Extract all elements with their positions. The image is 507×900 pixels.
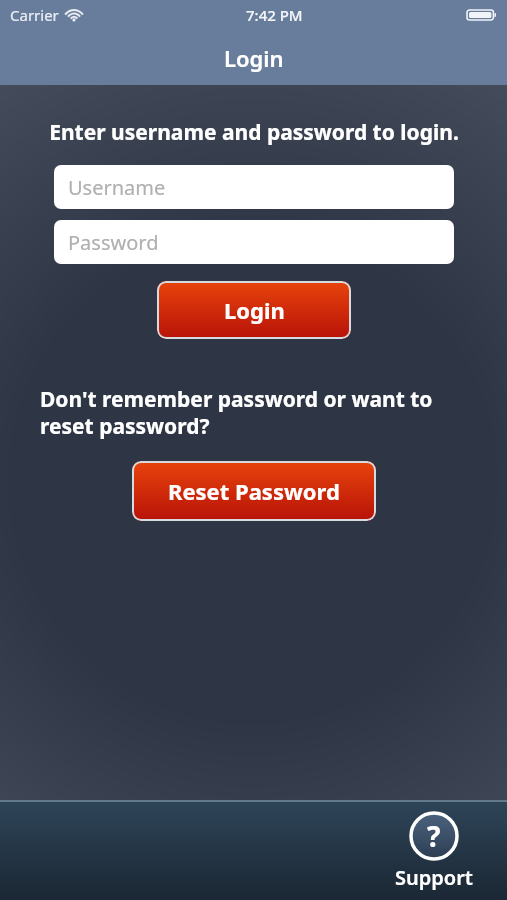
staticText: 7:42 PM (246, 5, 303, 25)
staticText: Don't remember password or want to reset… (40, 385, 433, 440)
button[interactable]: Reset Password (132, 461, 376, 521)
button[interactable]: Support (389, 808, 479, 893)
staticText: Carrier (10, 5, 59, 25)
staticText: Password (68, 229, 159, 256)
staticText: Username (68, 174, 166, 201)
staticText: Login (224, 295, 285, 325)
staticText: Support (395, 864, 473, 891)
staticText: ? (427, 817, 441, 855)
button[interactable]: Username (54, 165, 454, 209)
staticText: Reset Password (168, 476, 340, 506)
button[interactable]: Login (157, 281, 351, 339)
staticText: Enter username and password to login. (49, 118, 459, 147)
staticText: Login (224, 43, 284, 73)
button[interactable]: Password (54, 220, 454, 264)
